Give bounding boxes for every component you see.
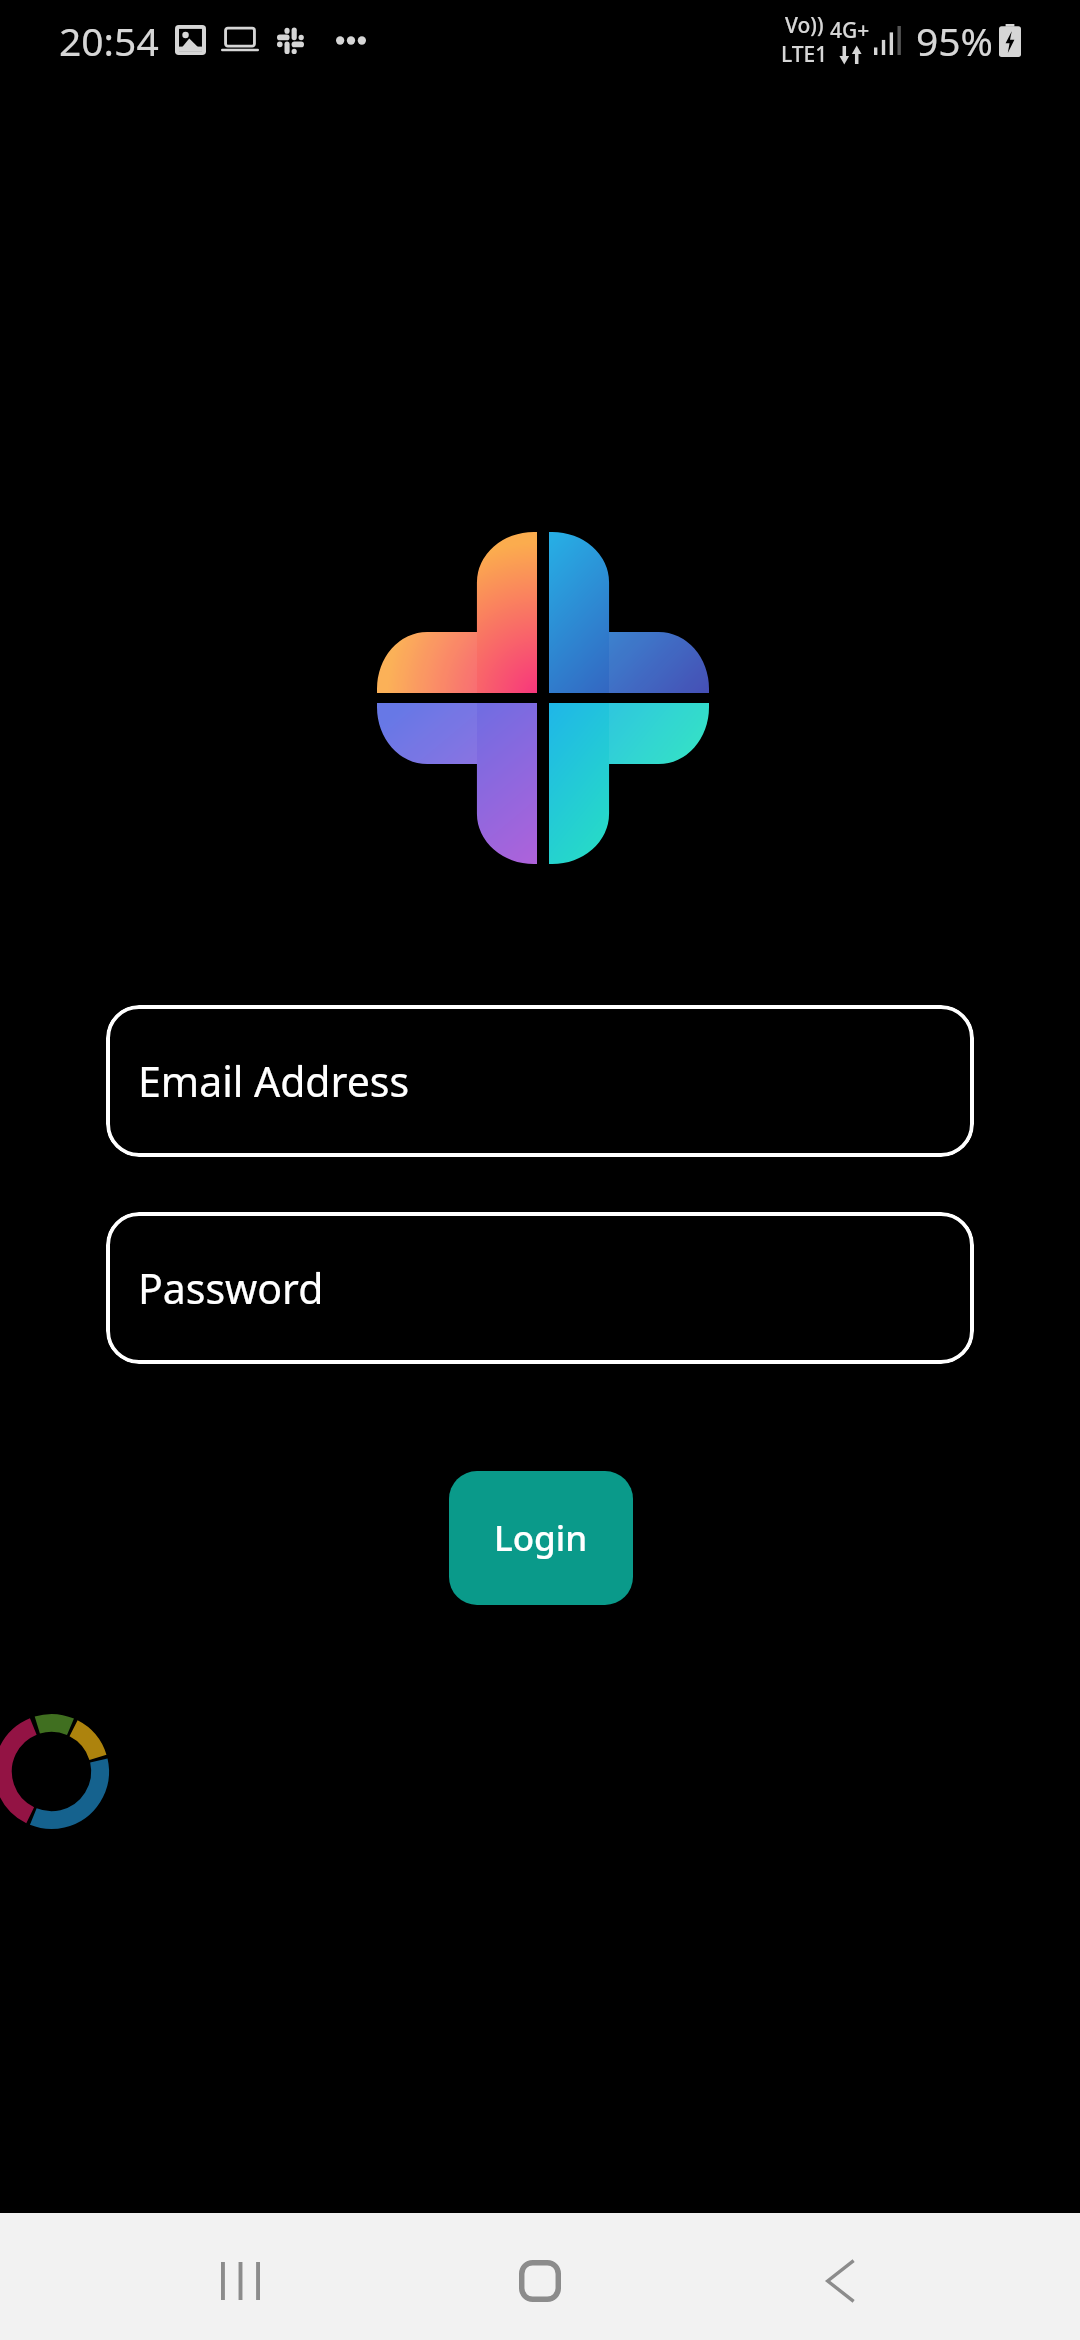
button[interactable]: Password — [106, 1212, 974, 1364]
staticText: 4G+ — [830, 16, 870, 45]
button[interactable]: Email Address — [106, 1005, 974, 1157]
staticText: Vo)) — [785, 11, 824, 40]
button[interactable]: Home — [390, 2217, 690, 2340]
staticText: Login — [494, 1514, 588, 1562]
staticText: Password — [138, 1260, 324, 1316]
button[interactable]: Back — [690, 2217, 990, 2340]
staticText: 20:54 — [59, 14, 159, 67]
staticText: 95% — [916, 14, 994, 67]
staticText: LTE1 — [781, 40, 828, 69]
staticText: Email Address — [138, 1053, 410, 1109]
button[interactable]: Login — [449, 1471, 633, 1605]
button[interactable]: Recent apps — [90, 2217, 390, 2340]
